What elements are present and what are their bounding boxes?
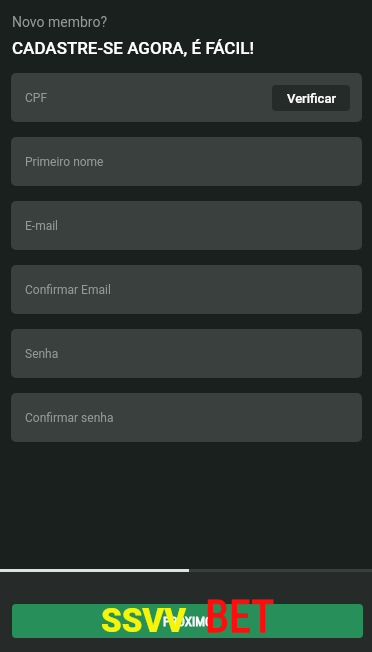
staticText: Novo membro? bbox=[12, 14, 108, 30]
staticText: Confirmar senha bbox=[25, 411, 114, 425]
button[interactable]: Senha bbox=[11, 329, 362, 378]
button[interactable]: PRÓXIMO bbox=[12, 604, 363, 638]
staticText: CPF bbox=[25, 91, 48, 105]
staticText: Senha bbox=[25, 347, 59, 361]
staticText: Primeiro nome bbox=[25, 155, 104, 169]
staticText: PRÓXIMO bbox=[163, 614, 213, 629]
button[interactable]: Primeiro nome bbox=[11, 137, 362, 186]
staticText: BET bbox=[205, 591, 275, 643]
staticText: Verificar bbox=[287, 91, 336, 106]
staticText: Confirmar Email bbox=[25, 283, 111, 297]
staticText: CADASTRE-SE AGORA, É FÁCIL! bbox=[12, 38, 254, 58]
button[interactable]: Confirmar Email bbox=[11, 265, 362, 314]
button[interactable]: Verificar bbox=[272, 85, 350, 111]
button[interactable]: Confirmar senha bbox=[11, 393, 362, 442]
staticText: SSVV bbox=[101, 601, 186, 640]
button[interactable]: E-mail bbox=[11, 201, 362, 250]
button[interactable]: CPF bbox=[11, 73, 362, 122]
staticText: E-mail bbox=[25, 219, 59, 233]
